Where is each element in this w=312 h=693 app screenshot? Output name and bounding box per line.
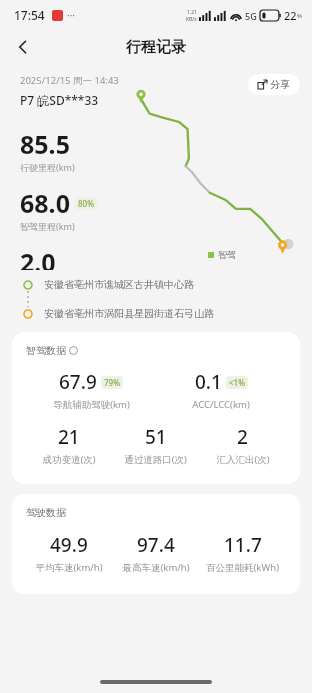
staticText: 68.0 [20,186,70,220]
staticText: 17:54 [14,7,45,23]
staticText: 2.0 [20,245,56,270]
staticText: P7 皖SD***33 [20,92,99,108]
button[interactable]: 分享 [248,74,300,95]
staticText: 21 [58,424,80,450]
staticText: 2 [237,424,248,450]
staticText: ACC/LCC(km) [192,398,250,411]
staticText: 智驾数据 [26,344,66,357]
staticText: 通过道路口(次) [124,453,187,466]
staticText: 安徽省亳州市涡阳县星园街道石弓山路 [44,307,214,320]
staticText: 0.1 [195,369,222,395]
staticText: 智驾 [218,249,236,260]
staticText: 驾驶数据 [26,506,66,519]
staticText: <1% [229,377,245,388]
staticText: 安徽省亳州市谯城区古井镇中心路 [44,278,194,291]
staticText: 97.4 [137,532,175,558]
staticText: 11.7 [224,532,262,558]
staticText: 平均车速(km/h) [35,561,103,574]
staticText: 80% [78,198,94,209]
button[interactable]: Info [69,346,78,355]
staticText: 85.5 [20,127,70,161]
staticText: KB/s [186,16,197,23]
staticText: % [297,12,302,20]
staticText: 百公里能耗(kWh) [206,561,279,574]
staticText: 行驶里程(km) [20,161,75,173]
staticText: 汇入汇出(次) [216,453,270,466]
staticText: 最高车速(km/h) [122,561,190,574]
staticText: 成功变道(次) [42,453,96,466]
staticText: 49.9 [50,532,88,558]
staticText: 分享 [270,78,290,91]
staticText: 5G [245,10,257,22]
staticText: ··· [67,8,76,22]
staticText: 67.9 [59,369,97,395]
staticText: 行程记录 [126,38,186,57]
staticText: 导航辅助驾驶(km) [53,398,130,411]
staticText: 51 [145,424,167,450]
button[interactable]: Back [6,30,40,64]
staticText: 22 [284,8,297,23]
staticText: 79% [104,377,120,388]
staticText: 智驾里程(km) [20,220,75,232]
staticText: 2025/12/15 周一 14:43 [20,74,119,87]
staticText: 1.21 [187,9,197,16]
